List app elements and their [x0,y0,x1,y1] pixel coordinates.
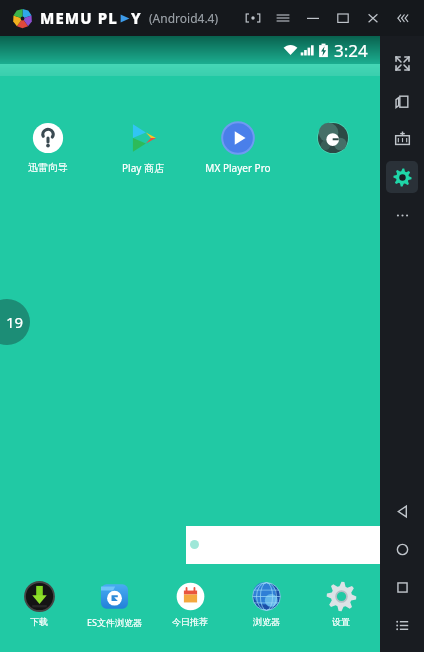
button[interactable]: Menu [268,0,298,36]
button[interactable]: Emulator settings [386,161,418,193]
button[interactable]: Collapse sidebar [388,0,418,36]
button[interactable]: App list [386,609,418,641]
button[interactable]: Maximize [328,0,358,36]
staticText: 浏览器 [253,616,280,627]
button[interactable]: Close [358,0,388,36]
button[interactable]: Back [386,495,418,527]
button[interactable]: 今日推荐 [153,580,227,627]
button[interactable]: Fullscreen [386,47,418,79]
staticText: 19 [6,312,24,332]
button[interactable]: 浏览器 [229,580,303,627]
button[interactable]: Google [285,120,380,161]
staticText: 今日推荐 [172,616,208,627]
staticText: 下载 [30,616,48,627]
staticText: MEMU PL [40,8,118,28]
button[interactable]: More options [386,199,418,231]
staticText: ES文件浏览器 [87,616,142,628]
button[interactable]: Screenshot [238,0,268,36]
button[interactable]: Minimize [298,0,328,36]
button[interactable]: Play Store [95,120,190,175]
staticText: (Android4.4) [149,10,219,26]
button[interactable]: 下载 [2,580,76,627]
button[interactable]: 设置 [304,580,378,627]
button[interactable]: Xunlei guide [0,120,95,174]
staticText: Play 商店 [122,161,164,175]
staticText: 设置 [332,616,350,627]
button[interactable]: Install APK [386,123,418,155]
staticText: 迅雷向导 [28,161,68,174]
button[interactable]: Rotate screen [386,85,418,117]
staticText: MX Player Pro [205,161,271,175]
button[interactable]: MX Player Pro [190,120,285,175]
button[interactable]: Recent apps [386,571,418,603]
button[interactable]: Home [386,533,418,565]
staticText: Y [131,8,142,28]
staticText: 3:24 [334,39,368,62]
button[interactable]: ES文件浏览器 [77,580,151,628]
button[interactable]: 19 notifications [0,299,30,345]
